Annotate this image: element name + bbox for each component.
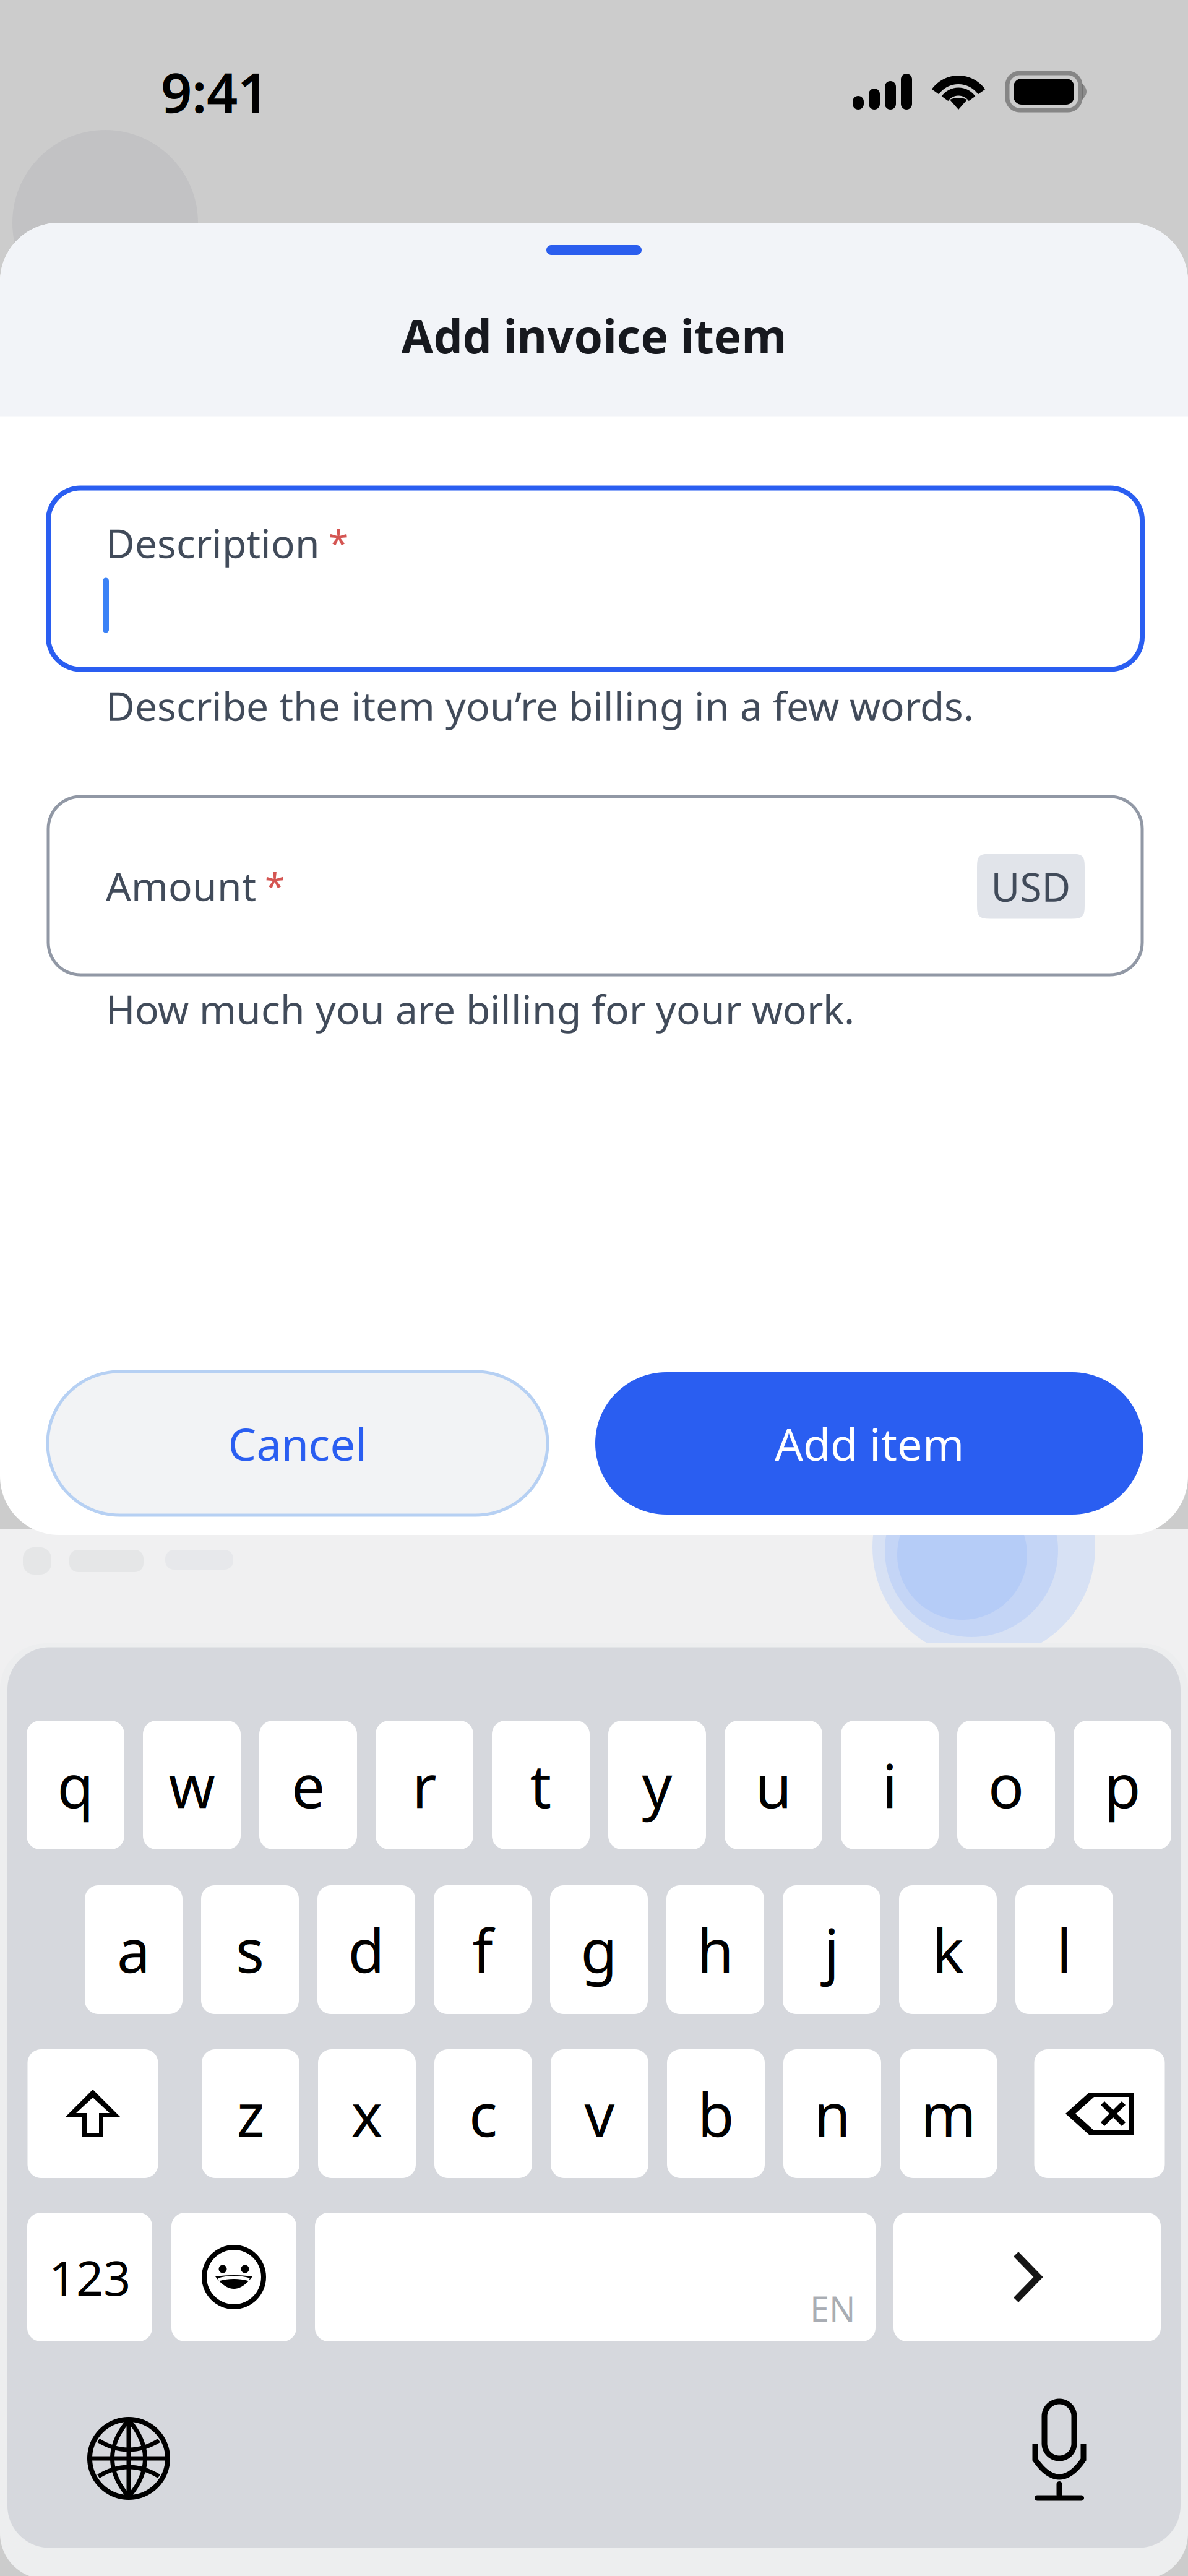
staticText: * [265,862,285,910]
button[interactable]: Dictate [1019,2393,1100,2504]
staticText: q [57,1746,94,1824]
button[interactable]: r [376,1721,473,1849]
staticText: USD [991,860,1071,913]
staticText: p [1104,1746,1141,1824]
button[interactable]: q [27,1721,124,1849]
button[interactable]: Shift [28,2049,158,2178]
button[interactable]: Cancel [48,1372,548,1515]
button[interactable]: Add item [595,1372,1143,1515]
staticText: Cancel [228,1414,367,1473]
staticText: d [348,1910,385,1989]
button[interactable]: x [318,2049,416,2178]
staticText: How much you are billing for your work. [106,983,854,1035]
staticText: v [584,2074,615,2153]
button[interactable]: d [317,1885,415,2014]
button[interactable]: v [551,2049,648,2178]
button[interactable]: Next keyboard [85,2415,172,2502]
button[interactable]: z [202,2049,299,2178]
button[interactable]: 123 [27,2213,152,2341]
staticText: Description [106,516,320,569]
staticText: Add invoice item [401,305,787,366]
button[interactable]: e [259,1721,357,1849]
button[interactable]: c [434,2049,532,2178]
staticText: y [642,1746,672,1824]
button[interactable]: l [1015,1885,1113,2014]
staticText: r [412,1746,437,1824]
staticText: x [351,2074,383,2153]
staticText: m [921,2074,976,2153]
button[interactable]: t [492,1721,590,1849]
button[interactable]: s [201,1885,299,2014]
staticText: Amount [106,859,256,912]
button[interactable]: b [667,2049,765,2178]
staticText: 123 [49,2245,131,2309]
button[interactable]: Space [315,2213,876,2341]
button[interactable]: g [550,1885,648,2014]
staticText: * [329,519,348,567]
button[interactable]: Delete [1034,2049,1165,2178]
button[interactable]: Emoji [171,2213,296,2341]
staticText: o [988,1746,1024,1824]
button[interactable]: m [900,2049,997,2178]
button[interactable]: o [957,1721,1055,1849]
staticText: n [814,2074,850,2153]
button[interactable]: n [783,2049,881,2178]
button[interactable]: i [841,1721,939,1849]
staticText: b [698,2074,734,2153]
button[interactable]: h [666,1885,764,2014]
staticText: l [1057,1910,1072,1989]
staticText: e [291,1746,325,1824]
staticText: i [882,1746,897,1824]
button[interactable]: u [725,1721,822,1849]
staticText: EN [810,2285,856,2332]
staticText: s [236,1910,264,1989]
button[interactable]: Return [893,2213,1161,2341]
staticText: a [117,1910,150,1989]
staticText: j [824,1910,839,1989]
staticText: w [169,1746,215,1824]
button[interactable]: p [1074,1721,1171,1849]
button[interactable]: w [143,1721,241,1849]
staticText: z [237,2074,265,2153]
staticText: f [472,1910,493,1989]
button[interactable]: a [85,1885,183,2014]
staticText: u [755,1746,792,1824]
staticText: k [932,1910,964,1989]
button[interactable]: f [434,1885,532,2014]
staticText: Describe the item you’re billing in a fe… [106,679,974,732]
button[interactable]: y [608,1721,706,1849]
staticText: g [581,1910,617,1989]
button[interactable]: j [783,1885,880,2014]
staticText: h [697,1910,734,1989]
staticText: 9:41 [161,55,269,128]
staticText: t [530,1746,552,1824]
staticText: c [469,2074,497,2153]
staticText: Add item [775,1414,964,1473]
button[interactable]: k [899,1885,997,2014]
